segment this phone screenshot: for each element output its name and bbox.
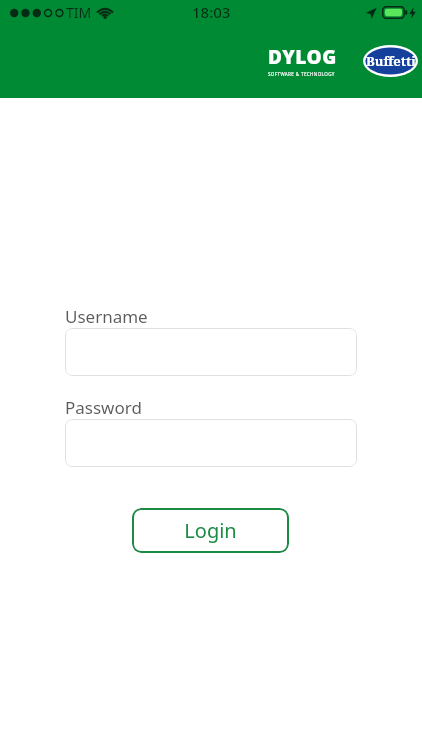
staticText: Password xyxy=(65,396,142,419)
staticText: DYLOG xyxy=(268,44,337,70)
staticText: Username xyxy=(65,305,148,328)
staticText: TIM xyxy=(66,3,92,22)
staticText: Login xyxy=(184,517,237,544)
staticText: SOFTWARE & TECHNOLOGY xyxy=(268,71,335,77)
staticText: 18:03 xyxy=(192,2,231,22)
button[interactable] xyxy=(65,328,357,376)
staticText: Buffetti xyxy=(366,52,416,70)
button[interactable]: Login xyxy=(132,508,289,553)
button[interactable] xyxy=(65,419,357,467)
